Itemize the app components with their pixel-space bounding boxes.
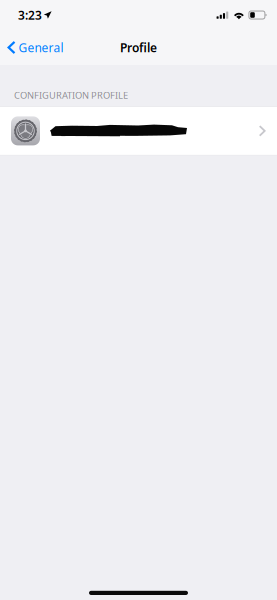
button[interactable]	[0, 106, 277, 155]
staticText: General	[18, 39, 63, 55]
staticText: Profile	[120, 39, 157, 55]
staticText: 3:23	[18, 7, 42, 23]
staticText: CONFIGURATION PROFILE	[14, 89, 128, 101]
button[interactable]: General	[0, 30, 71, 64]
